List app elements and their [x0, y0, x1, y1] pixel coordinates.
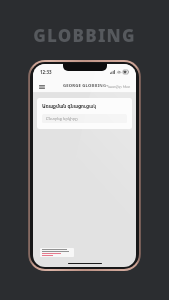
staticText: GLOBBING: [33, 24, 136, 47]
staticText: Պատվեր հետ: [106, 84, 131, 89]
button[interactable]: Open navigation menu: [38, 83, 45, 90]
staticText: Ընտրեք երկիրը: [46, 116, 78, 121]
staticText: 12:33: [40, 69, 52, 75]
staticText: GEORGE GLOBBING: [63, 83, 107, 89]
button[interactable]: Ընտրեք երկիրը: [42, 114, 127, 123]
button[interactable]: Պատվեր հետ: [105, 83, 132, 90]
staticText: Առաքման գնացուցակ: [42, 103, 97, 109]
